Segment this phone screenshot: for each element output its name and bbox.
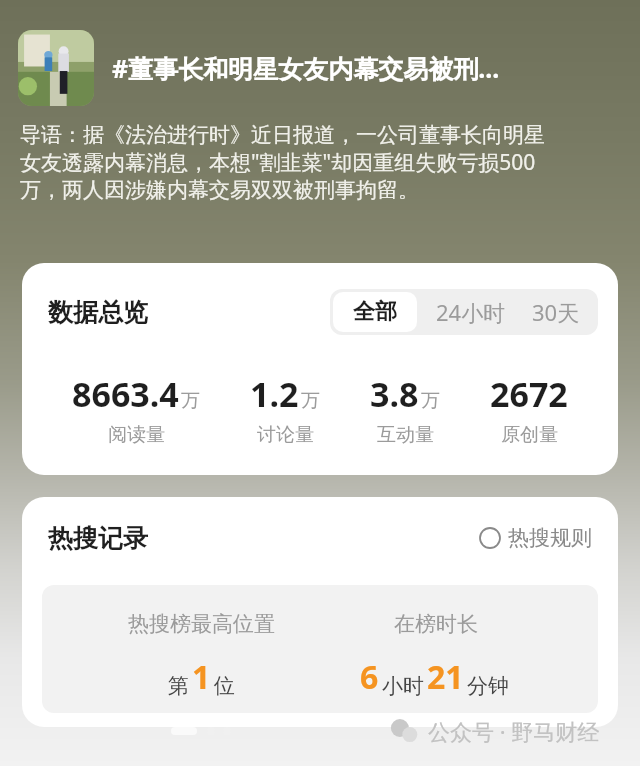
staticText: 小时 (382, 673, 424, 699)
staticText: 1.2 (250, 371, 299, 417)
staticText: 万，两人因涉嫌内幕交易双双被刑事拘留。 (20, 177, 419, 203)
staticText: #董事长和明星女友内幕交易被刑... (112, 51, 500, 85)
staticText: 导语：据《法治进行时》近日报道，一公司董事长向明星 (20, 122, 545, 148)
staticText: 第 (168, 673, 189, 699)
staticText: 30天 (532, 297, 580, 327)
staticText: 热搜规则 (508, 525, 592, 551)
staticText: 在榜时长 (394, 611, 478, 637)
staticText: 全部 (353, 298, 397, 326)
staticText: 8663.4 (72, 371, 179, 417)
staticText: 热搜记录 (48, 523, 148, 554)
staticText: 3.8 (370, 371, 419, 417)
staticText: 万 (421, 389, 440, 413)
staticText: 1 (192, 655, 211, 699)
button[interactable]: 全部 (333, 292, 417, 332)
staticText: 位 (214, 673, 235, 699)
staticText: 万 (301, 389, 320, 413)
button[interactable]: 热搜规则 (475, 521, 596, 555)
staticText: 6 (360, 655, 379, 699)
other: 热搜规则 (479, 527, 501, 549)
staticText: 2672 (490, 371, 568, 417)
button[interactable]: 30天 (522, 289, 598, 335)
staticText: 互动量 (377, 423, 434, 447)
staticText: 原创量 (501, 423, 558, 447)
staticText: 万 (181, 389, 200, 413)
button[interactable]: 24小时 (420, 289, 522, 335)
staticText: 女友透露内幕消息，本想"割韭菜"却因重组失败亏损500 (20, 148, 536, 177)
staticText: 21 (427, 655, 464, 699)
staticText: 24小时 (436, 297, 506, 327)
staticText: 阅读量 (108, 423, 165, 447)
staticText: 公众号 · 野马财经 (428, 716, 600, 746)
staticText: 分钟 (467, 673, 509, 699)
staticText: 讨论量 (257, 423, 314, 447)
staticText: 热搜榜最高位置 (128, 611, 275, 637)
staticText: 数据总览 (48, 297, 148, 328)
